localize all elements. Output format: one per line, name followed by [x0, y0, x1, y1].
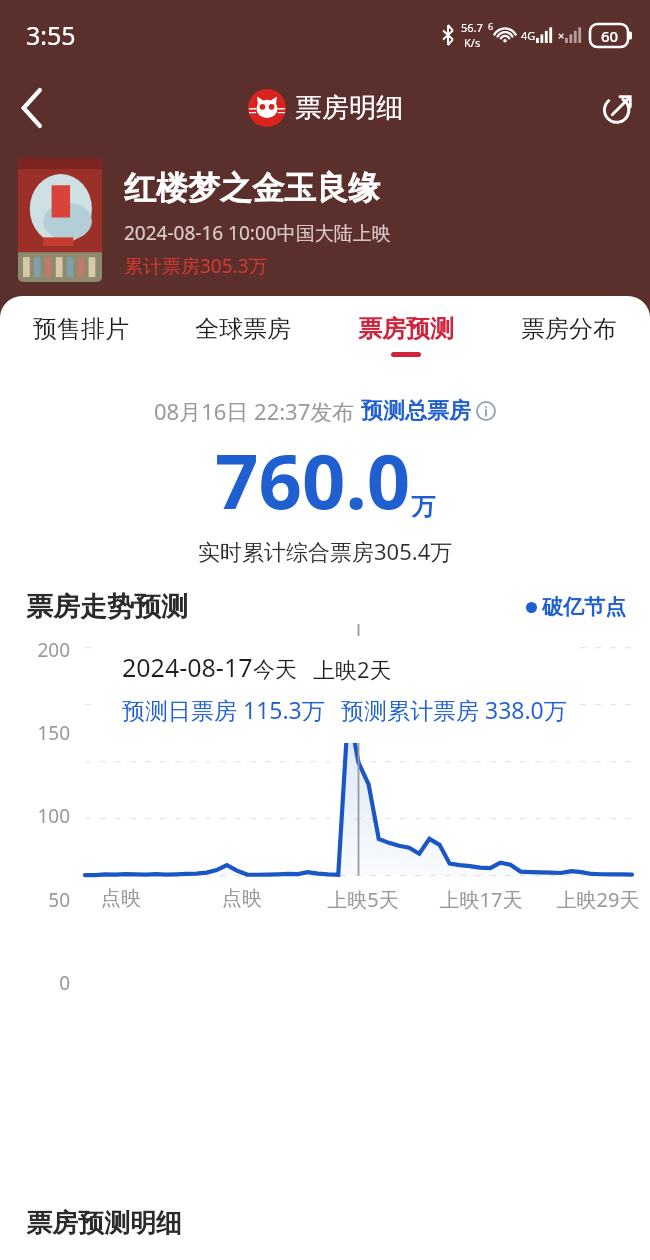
staticText: 0: [0, 970, 70, 996]
staticText: 上映29天: [273, 886, 650, 913]
staticText: 760.0: [215, 428, 411, 532]
staticText: 今天: [253, 656, 297, 684]
staticText: 预测总票房: [361, 397, 471, 425]
button[interactable]: Share: [586, 76, 650, 140]
staticText: ×: [558, 28, 565, 43]
staticText: 08月16日 22:37发布: [154, 396, 361, 426]
staticText: 全球票房: [195, 314, 291, 344]
staticText: 票房明细: [295, 91, 403, 125]
staticText: 56.7: [461, 20, 483, 35]
staticText: 点映: [0, 886, 567, 911]
staticText: 60: [601, 26, 619, 46]
button[interactable]: 票房预测: [324, 296, 487, 374]
staticText: 3:55: [26, 18, 76, 52]
staticText: 50: [0, 887, 70, 913]
staticText: 4G: [521, 28, 536, 43]
staticText: 万: [411, 492, 435, 522]
staticText: K/s: [464, 35, 481, 50]
staticText: 票房预测: [358, 314, 454, 344]
staticText: 红楼梦之金玉良缘: [124, 168, 380, 208]
staticText: 2024-08-16 10:00中国大陆上映: [124, 220, 391, 246]
staticText: 6: [488, 20, 494, 32]
button[interactable]: 全球票房: [162, 296, 324, 374]
staticText: 上映2天: [313, 654, 392, 684]
staticText: 破亿节点: [542, 594, 626, 620]
staticText: 票房预测明细: [26, 1207, 182, 1240]
staticText: 预测日票房 115.3万: [122, 694, 325, 725]
button[interactable]: 预售排片: [0, 296, 162, 374]
button[interactable]: 破亿节点: [526, 594, 626, 620]
button[interactable]: 票房分布: [487, 296, 650, 374]
staticText: 上映5天: [38, 886, 650, 913]
staticText: 票房走势预测: [26, 590, 188, 624]
button[interactable]: [18, 158, 102, 282]
staticText: 累计票房305.3万: [124, 253, 268, 279]
staticText: 票房分布: [521, 314, 617, 344]
button[interactable]: 2024-08-17: [100, 636, 572, 743]
staticText: 150: [0, 720, 70, 746]
staticText: 点映: [0, 886, 446, 911]
button[interactable]: Back: [0, 76, 64, 140]
staticText: 预测累计票房 338.0万: [341, 694, 567, 725]
staticText: 上映17天: [156, 886, 650, 913]
staticText: 100: [0, 803, 70, 829]
staticText: 200: [0, 637, 70, 663]
staticText: 预售排片: [33, 314, 129, 344]
staticText: 实时累计综合票房305.4万: [198, 536, 453, 566]
staticText: 2024-08-17: [122, 650, 253, 684]
